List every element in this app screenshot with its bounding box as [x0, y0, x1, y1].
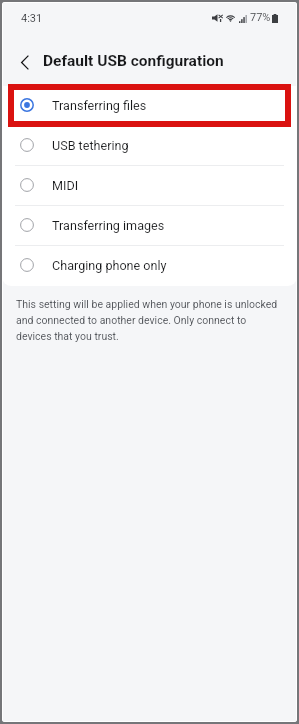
- staticText: This setting will be applied when your p…: [16, 298, 280, 342]
- other: Mobile signal: [239, 15, 247, 23]
- other: Wi-Fi: [225, 14, 236, 22]
- other: Sound off: [212, 14, 223, 22]
- other: Battery: [272, 14, 278, 23]
- staticText: USB tethering: [52, 138, 129, 153]
- button[interactable]: Charging phone only: [2, 246, 297, 286]
- button[interactable]: Transferring images: [2, 206, 297, 246]
- staticText: Default USB configuration: [43, 52, 224, 70]
- button[interactable]: Navigate up: [9, 46, 41, 78]
- staticText: 4:31: [21, 12, 43, 25]
- staticText: Charging phone only: [52, 258, 167, 273]
- button[interactable]: MIDI: [2, 166, 297, 206]
- button[interactable]: Transferring files: [2, 86, 297, 126]
- staticText: Transferring files: [52, 98, 147, 113]
- staticText: 77%: [250, 11, 271, 24]
- staticText: MIDI: [52, 178, 79, 193]
- button[interactable]: USB tethering: [2, 126, 297, 166]
- staticText: Transferring images: [52, 218, 165, 233]
